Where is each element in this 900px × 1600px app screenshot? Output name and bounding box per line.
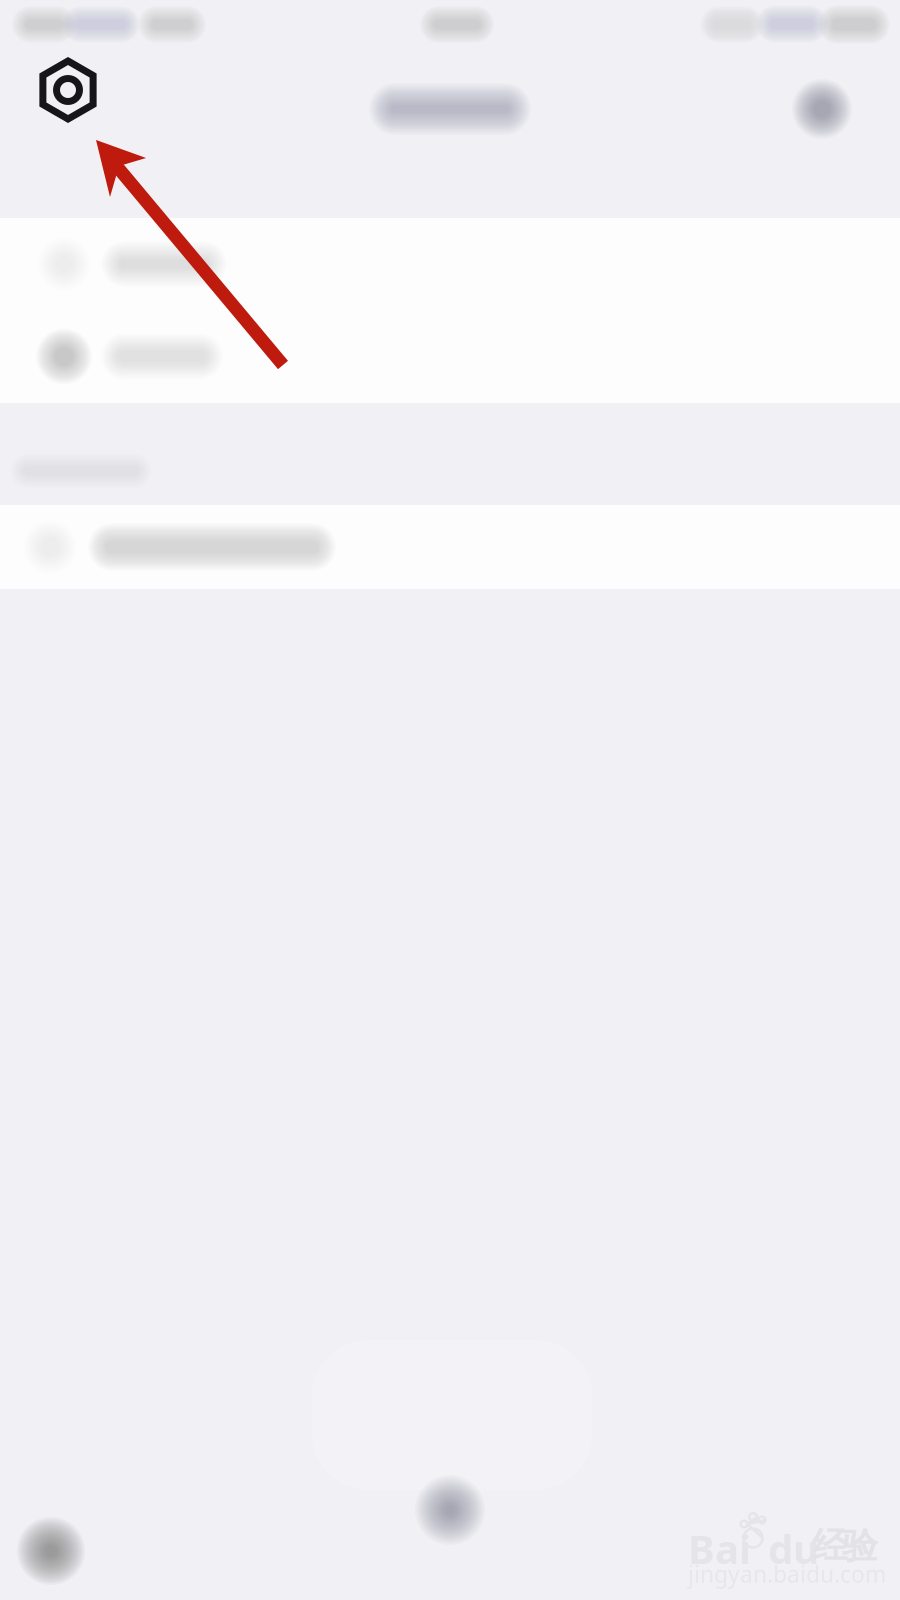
staticText: Bai (688, 1522, 751, 1575)
button[interactable] (0, 310, 900, 403)
staticText: 经 (812, 1524, 848, 1568)
staticText: jingyan.baidu.com (688, 1559, 886, 1589)
button[interactable] (0, 218, 900, 310)
staticText: du (768, 1522, 819, 1575)
staticText: 验 (842, 1524, 878, 1568)
button[interactable] (0, 505, 900, 589)
